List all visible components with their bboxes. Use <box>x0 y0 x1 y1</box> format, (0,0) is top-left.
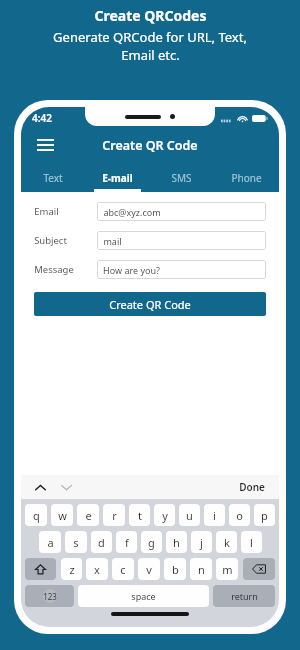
button[interactable]: x <box>86 558 108 580</box>
button[interactable]: t <box>129 504 150 526</box>
staticText: y <box>162 508 168 523</box>
button[interactable]: Backspace <box>243 558 275 580</box>
staticText: Done <box>239 480 265 494</box>
button[interactable]: g <box>141 531 162 553</box>
button[interactable]: z <box>61 558 82 580</box>
button[interactable]: How are you? <box>97 260 266 279</box>
staticText: d <box>98 535 105 550</box>
button[interactable]: y <box>154 504 175 526</box>
button[interactable]: a <box>39 531 61 553</box>
staticText: k <box>224 535 230 550</box>
staticText: c <box>120 562 126 577</box>
staticText: Message <box>34 263 74 276</box>
staticText: u <box>186 508 193 523</box>
button[interactable]: space <box>78 585 209 607</box>
staticText: Subject <box>34 234 67 247</box>
staticText: w <box>58 508 67 523</box>
staticText: mail <box>103 235 122 247</box>
button[interactable]: Menu <box>31 131 59 159</box>
button[interactable]: Next field <box>57 478 75 496</box>
staticText: v <box>146 562 152 577</box>
button[interactable]: h <box>166 531 187 553</box>
button[interactable]: return <box>213 585 275 607</box>
staticText: e <box>85 508 92 523</box>
staticText: Create QRCodes <box>94 6 207 25</box>
button[interactable]: k <box>216 531 237 553</box>
button[interactable]: s <box>65 531 87 553</box>
staticText: m <box>222 562 233 577</box>
staticText: b <box>172 562 179 577</box>
staticText: return <box>231 590 258 602</box>
staticText: j <box>200 535 203 550</box>
staticText: How are you? <box>103 264 160 276</box>
button[interactable]: Phone <box>214 163 279 192</box>
button[interactable]: 123 <box>25 585 74 607</box>
button[interactable]: q <box>25 504 47 526</box>
staticText: Phone <box>231 171 262 185</box>
button[interactable]: f <box>116 531 137 553</box>
button[interactable]: Done <box>235 478 269 496</box>
staticText: h <box>173 535 180 550</box>
staticText: Text <box>43 171 63 185</box>
button[interactable]: i <box>204 504 225 526</box>
button[interactable]: Text <box>21 163 85 192</box>
staticText: s <box>73 535 79 550</box>
staticText: o <box>236 508 243 523</box>
button[interactable]: m <box>216 558 238 580</box>
staticText: abc@xyz.com <box>103 206 161 218</box>
button[interactable]: r <box>103 504 125 526</box>
button[interactable]: v <box>138 558 160 580</box>
button[interactable]: d <box>91 531 112 553</box>
staticText: r <box>112 508 117 523</box>
button[interactable]: u <box>179 504 200 526</box>
button[interactable]: Create QR Code <box>34 292 266 316</box>
staticText: n <box>198 562 205 577</box>
staticText: 123 <box>43 591 57 602</box>
staticText: Generate QRCode for URL, Text, <box>53 28 247 46</box>
button[interactable]: j <box>191 531 212 553</box>
staticText: l <box>250 535 253 550</box>
staticText: t <box>138 508 142 523</box>
staticText: 4:42 <box>32 111 52 125</box>
button[interactable]: c <box>112 558 134 580</box>
staticText: Email etc. <box>121 46 180 64</box>
button[interactable]: Previous field <box>31 478 49 496</box>
button[interactable]: w <box>51 504 73 526</box>
staticText: q <box>33 508 40 523</box>
button[interactable]: o <box>229 504 250 526</box>
button[interactable]: SMS <box>149 163 214 192</box>
button[interactable]: abc@xyz.com <box>97 202 266 221</box>
staticText: f <box>125 535 129 550</box>
staticText: Email <box>34 205 59 218</box>
staticText: SMS <box>171 171 192 185</box>
button[interactable]: n <box>190 558 212 580</box>
staticText: g <box>148 535 155 550</box>
button[interactable]: E-mail <box>85 163 149 192</box>
staticText: Create QR Code <box>102 137 198 154</box>
staticText: E-mail <box>102 171 133 185</box>
staticText: Create QR Code <box>109 297 191 312</box>
staticText: i <box>213 508 216 523</box>
staticText: x <box>94 562 100 577</box>
staticText: z <box>69 562 75 577</box>
button[interactable]: l <box>241 531 262 553</box>
button[interactable]: mail <box>97 231 266 250</box>
staticText: space <box>131 590 156 602</box>
button[interactable]: p <box>254 504 275 526</box>
staticText: p <box>261 508 268 523</box>
button[interactable]: e <box>77 504 99 526</box>
button[interactable]: Shift <box>25 558 56 580</box>
staticText: a <box>47 535 54 550</box>
button[interactable]: b <box>164 558 186 580</box>
